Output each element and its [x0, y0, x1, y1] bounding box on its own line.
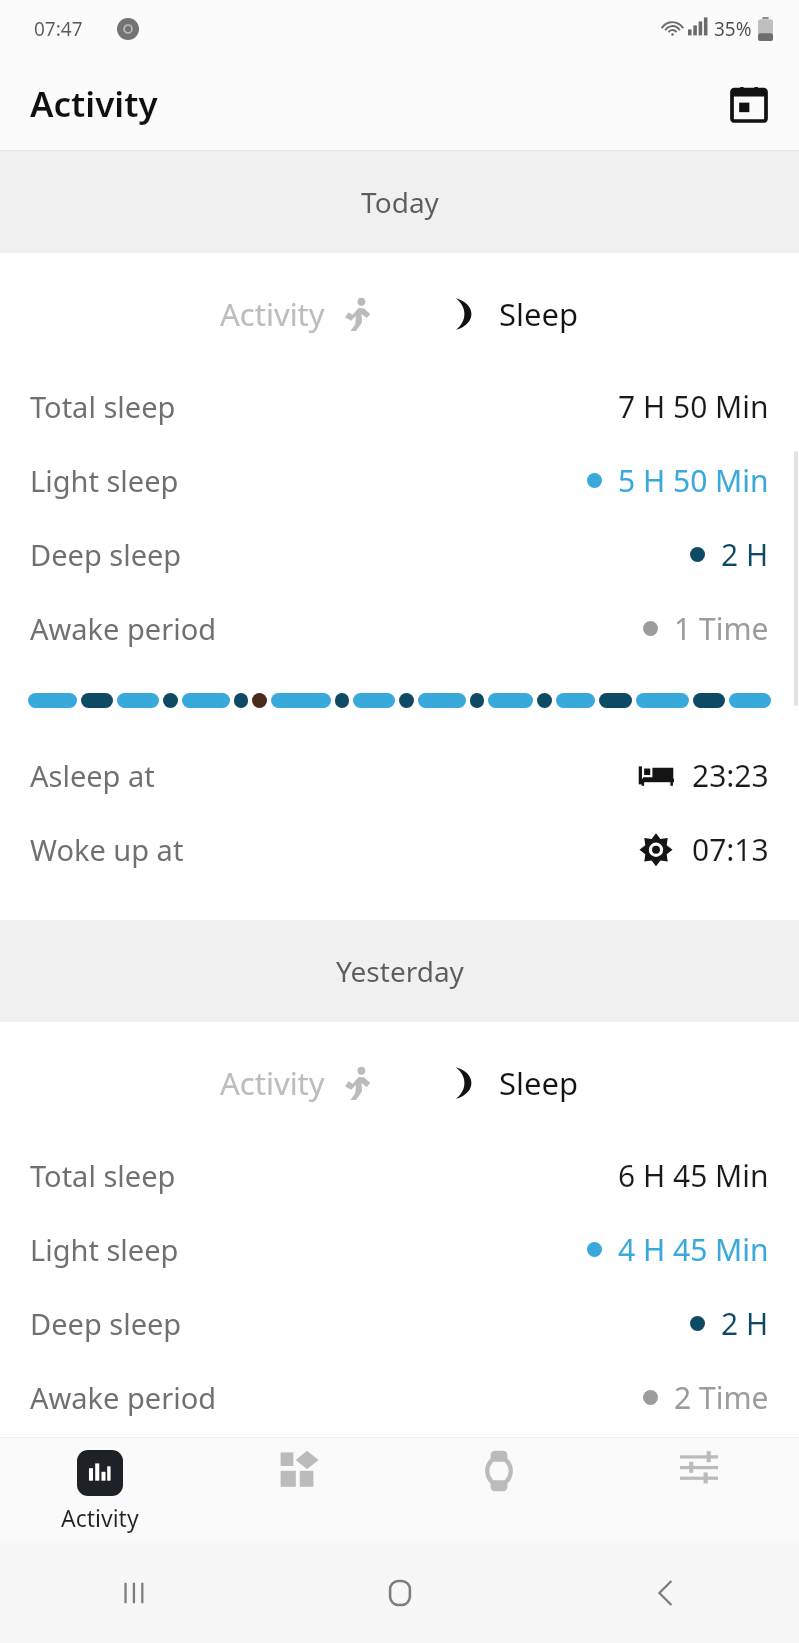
staticText: 2 Time	[674, 1377, 769, 1418]
button[interactable]: Asleep at	[0, 738, 799, 812]
staticText: Deep sleep	[30, 535, 182, 574]
staticText: Total sleep	[30, 1156, 176, 1195]
staticText: Sleep	[499, 293, 579, 335]
staticText: 07:13	[692, 829, 769, 870]
staticText: 6 H 45 Min	[618, 1155, 769, 1196]
button[interactable]: Total sleep	[0, 369, 799, 443]
button[interactable]: Watch	[399, 1438, 599, 1543]
button[interactable]: Deep sleep	[0, 1286, 799, 1360]
button[interactable]: Home	[267, 1543, 533, 1643]
staticText: 2 H	[721, 1303, 769, 1344]
button[interactable]: Activity	[0, 1438, 199, 1543]
button[interactable]: Apps	[199, 1438, 399, 1543]
staticText: Asleep at	[30, 756, 155, 795]
staticText: Activity	[61, 1502, 139, 1533]
button[interactable]: Sleep	[437, 287, 587, 341]
staticText: Total sleep	[30, 387, 176, 426]
staticText: Today	[361, 183, 439, 221]
button[interactable]: Sleep	[437, 1056, 587, 1110]
staticText: Light sleep	[30, 1230, 179, 1269]
button[interactable]: Light sleep	[0, 443, 799, 517]
staticText: Awake period	[30, 1378, 217, 1417]
button[interactable]: Light sleep	[0, 1212, 799, 1286]
button[interactable]: Awake period	[0, 1360, 799, 1434]
staticText: Deep sleep	[30, 1304, 182, 1343]
button[interactable]: Calendar	[721, 76, 777, 132]
staticText: 4 H 45 Min	[618, 1229, 769, 1270]
button[interactable]: Back	[533, 1543, 799, 1643]
staticText: Yesterday	[336, 952, 464, 990]
button[interactable]: Woke up at	[0, 812, 799, 886]
staticText: 7 H 50 Min	[618, 386, 769, 427]
staticText: Woke up at	[30, 830, 184, 869]
button[interactable]: Awake period	[0, 591, 799, 665]
staticText: Sleep	[499, 1062, 579, 1104]
staticText: 07:47	[34, 16, 83, 42]
staticText: 23:23	[692, 755, 769, 796]
button[interactable]: Recents	[0, 1543, 267, 1643]
staticText: Activity	[220, 293, 325, 335]
staticText: 1 Time	[674, 608, 769, 649]
staticText: Activity	[30, 80, 158, 128]
staticText: Activity	[220, 1062, 325, 1104]
button[interactable]: Total sleep	[0, 1138, 799, 1212]
staticText: 5 H 50 Min	[618, 460, 769, 501]
staticText: Awake period	[30, 609, 217, 648]
staticText: 2 H	[721, 534, 769, 575]
button[interactable]: Deep sleep	[0, 517, 799, 591]
button[interactable]: Activity	[212, 287, 383, 341]
staticText: 35%	[714, 16, 752, 42]
button[interactable]: Settings	[599, 1438, 799, 1543]
staticText: Light sleep	[30, 461, 179, 500]
button[interactable]: Activity	[212, 1056, 383, 1110]
